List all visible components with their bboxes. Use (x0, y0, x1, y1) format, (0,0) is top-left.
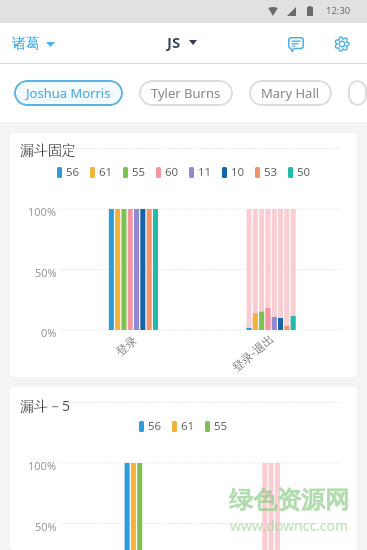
staticText: 50 (297, 164, 311, 180)
staticText: 61 (181, 418, 195, 434)
button[interactable]: Tyler Burns (139, 80, 233, 106)
staticText: 12:30 (326, 4, 351, 17)
staticText: 56 (148, 418, 162, 434)
button[interactable]: JS (163, 26, 201, 58)
staticText: www.downcc.com (230, 516, 349, 535)
button[interactable]: Messages (279, 27, 313, 61)
staticText: 漏斗－5 (20, 396, 71, 415)
button[interactable]: Mark Holt (348, 80, 367, 106)
staticText: 56 (66, 164, 80, 180)
staticText: 绿色资源网 (229, 485, 349, 515)
button[interactable]: Joshua Morris (14, 80, 123, 106)
staticText: 登录 (113, 333, 140, 359)
button[interactable]: Mary Hall (249, 80, 332, 106)
staticText: 53 (264, 164, 278, 180)
staticText: 60 (165, 164, 179, 180)
staticText: Tyler Burns (151, 84, 221, 102)
staticText: 0% (41, 325, 57, 340)
staticText: 10 (231, 164, 245, 180)
staticText: 登录-退出 (229, 331, 277, 375)
staticText: 漏斗固定 (20, 142, 76, 160)
staticText: 100% (28, 204, 57, 219)
staticText: 100% (28, 458, 57, 473)
button[interactable]: 诸葛 (8, 29, 59, 59)
button[interactable]: Settings (325, 27, 359, 61)
staticText: 50% (35, 519, 57, 534)
staticText: 55 (214, 418, 228, 434)
staticText: Joshua Morris (26, 84, 111, 102)
staticText: 55 (132, 164, 146, 180)
staticText: Mary Hall (261, 84, 320, 102)
staticText: 诸葛 (12, 35, 40, 53)
staticText: 11 (198, 164, 212, 180)
staticText: 50% (35, 265, 57, 280)
staticText: JS (167, 32, 181, 52)
button[interactable]: 漏斗－5 (10, 387, 357, 550)
button[interactable]: 漏斗固定 (10, 133, 357, 377)
staticText: 61 (99, 164, 113, 180)
